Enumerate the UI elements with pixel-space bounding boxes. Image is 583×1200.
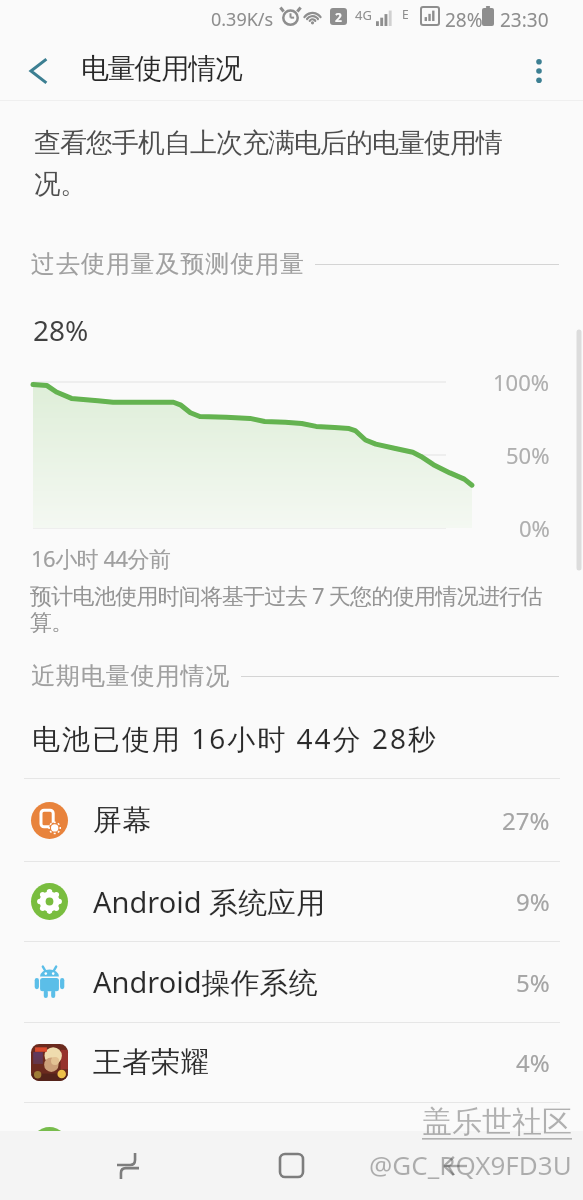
button[interactable]: Recents bbox=[31, 1131, 225, 1200]
staticText: 23:30 bbox=[500, 7, 549, 33]
staticText: 4% bbox=[516, 1046, 550, 1079]
button[interactable]: Back bbox=[358, 1131, 552, 1200]
button[interactable]: Back bbox=[0, 40, 76, 101]
staticText: 0.39K/s bbox=[211, 7, 274, 32]
staticText: 50% bbox=[506, 440, 550, 470]
staticText: 5% bbox=[516, 966, 550, 999]
button[interactable]: More options bbox=[494, 40, 583, 101]
staticText: @GC_RQX9FD3U bbox=[369, 1147, 572, 1182]
staticText: 盖乐世社区 bbox=[422, 1103, 572, 1141]
button[interactable]: Home bbox=[194, 1131, 388, 1200]
staticText: 电池已使用 16小时 44分 28秒 bbox=[32, 719, 438, 757]
button[interactable]: 王者荣耀 bbox=[0, 1023, 583, 1102]
staticText: 2 bbox=[335, 9, 342, 25]
staticText: E bbox=[402, 6, 409, 22]
staticText: Android操作系统 bbox=[93, 962, 318, 1002]
staticText: 27% bbox=[502, 804, 550, 837]
staticText: Android 系统应用 bbox=[93, 882, 326, 922]
button[interactable]: Android 系统应用 bbox=[0, 862, 583, 941]
staticText: 100% bbox=[493, 367, 550, 397]
staticText: 屏幕 bbox=[93, 802, 151, 839]
staticText: 过去使用量及预测使用量 bbox=[31, 249, 305, 279]
staticText: 28% bbox=[33, 311, 89, 349]
staticText: 16小时 44分前 bbox=[31, 543, 171, 573]
button[interactable]: 屏幕 bbox=[0, 779, 583, 861]
staticText: 9% bbox=[516, 885, 550, 918]
staticText: 0% bbox=[519, 513, 550, 543]
staticText: 查看您手机自上次充满电后的电量使用情况。 bbox=[34, 126, 526, 201]
staticText: 电量使用情况 bbox=[81, 51, 242, 86]
staticText: 近期电量使用情况 bbox=[31, 661, 231, 691]
staticText: 4G bbox=[355, 6, 372, 24]
staticText: 王者荣耀 bbox=[93, 1044, 209, 1081]
button[interactable]: Android操作系统 bbox=[0, 942, 583, 1022]
staticText: 预计电池使用时间将基于过去 7 天您的使用情况进行估 算。 bbox=[30, 580, 542, 637]
staticText: 28% bbox=[445, 7, 483, 33]
